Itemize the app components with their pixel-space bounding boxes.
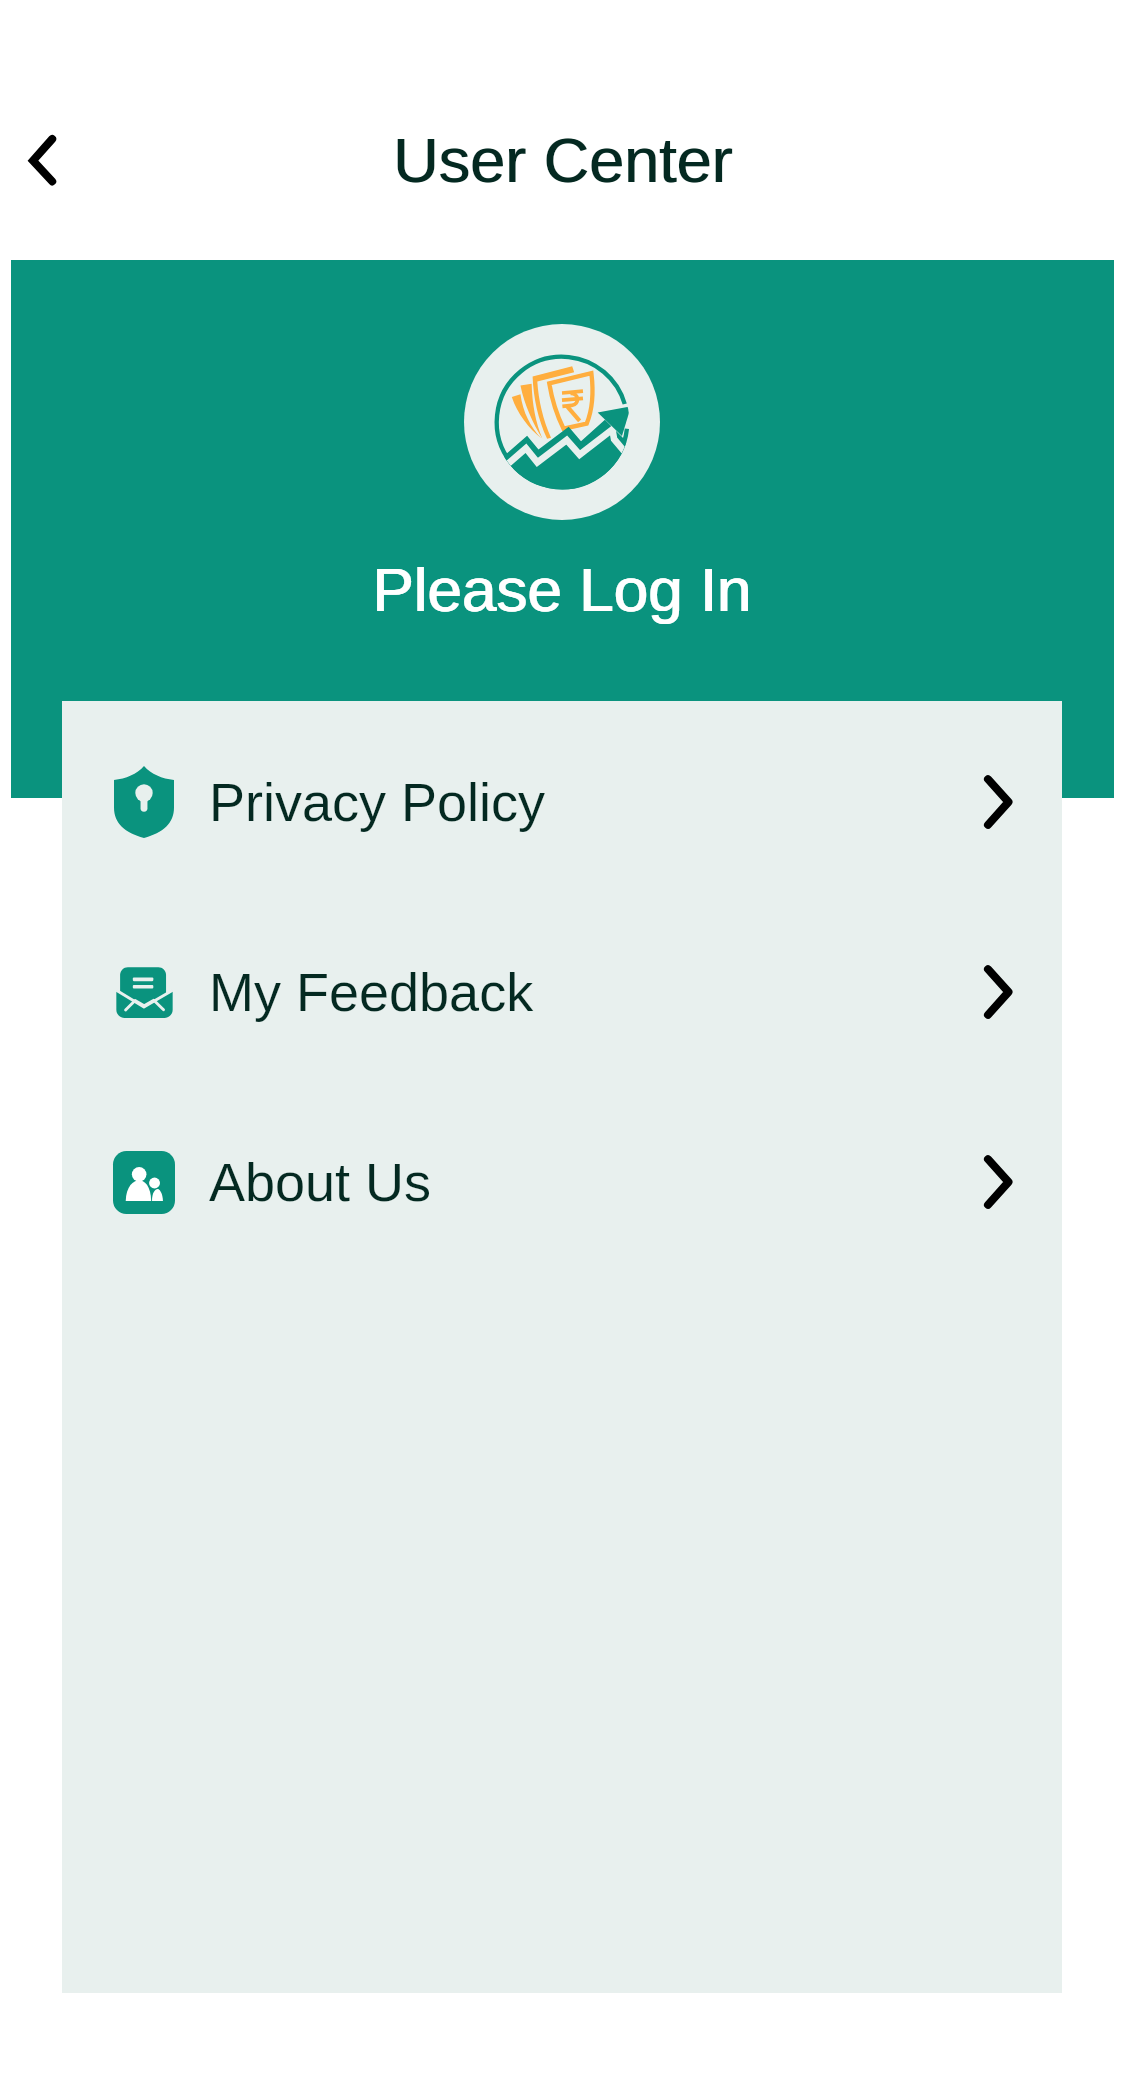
- staticText: Please Log In: [11, 555, 1114, 624]
- button[interactable]: Privacy Policy: [62, 707, 1062, 897]
- staticText: My Feedback: [209, 962, 534, 1022]
- staticText: User Center: [0, 125, 1125, 195]
- staticText: Please Log In: [10, 555, 1113, 624]
- staticText: Privacy Policy: [209, 772, 546, 832]
- staticText: About Us: [209, 1152, 432, 1212]
- staticText: User Center: [1, 125, 1125, 195]
- button[interactable]: Back: [0, 116, 96, 206]
- button[interactable]: My Feedback: [62, 897, 1062, 1087]
- button[interactable]: About Us: [62, 1087, 1062, 1277]
